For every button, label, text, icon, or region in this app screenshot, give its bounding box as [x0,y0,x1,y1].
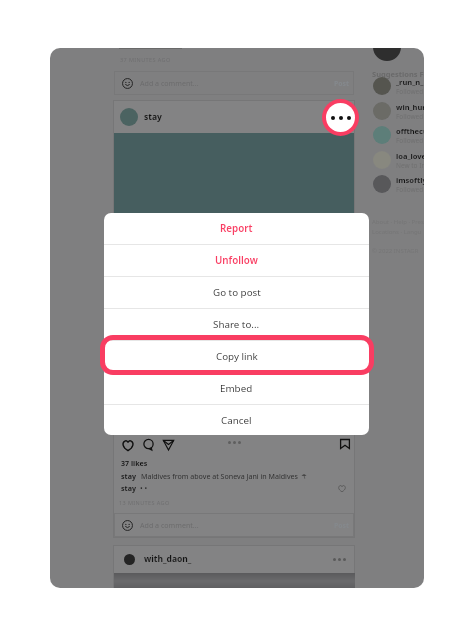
staticText: _run_n_ [396,77,424,87]
staticText: New to In [396,161,424,170]
staticText: Followed [396,87,424,96]
staticText: win_hur [396,102,424,112]
staticText: Share to... [213,318,260,331]
staticText: Add a comment... [140,520,199,530]
staticText: Followed [396,112,424,121]
staticText: 37 likes [121,458,148,468]
staticText: Followed [396,136,424,145]
staticText: Embed [220,382,253,395]
button[interactable]: Copy link [104,341,369,372]
staticText: with_daon_ [144,553,192,565]
button[interactable]: Embed [104,373,369,404]
staticText: Post [334,79,349,88]
button[interactable]: More options [322,99,359,136]
staticText: Go to post [213,286,261,299]
button[interactable]: Share to... [104,309,369,340]
staticText: Add a comment... [140,78,199,88]
staticText: Suggestions Fo [372,69,424,79]
staticText: 37 MINUTES AGO [120,56,171,63]
staticText: 13 MINUTES AGO [119,499,170,506]
staticText: Unfollow [215,254,258,267]
staticText: Maldives from above at Soneva Jani in Ma… [141,471,298,481]
button[interactable]: Report [104,213,369,244]
button[interactable]: Cancel [104,405,369,435]
staticText: Cancel [221,414,252,427]
button[interactable]: Unfollow [104,245,369,276]
staticText: Report [220,222,253,235]
staticText: imsoftly [396,175,424,185]
staticText: stay [121,483,136,493]
staticText: • • [140,483,148,493]
staticText: loa_love [396,151,424,161]
staticText: stay [144,111,162,123]
staticText: Copy link [216,350,258,363]
staticText: offthecu [396,126,424,136]
button[interactable]: Go to post [104,277,369,308]
staticText: Followed [396,185,424,194]
staticText: stay [121,471,136,481]
